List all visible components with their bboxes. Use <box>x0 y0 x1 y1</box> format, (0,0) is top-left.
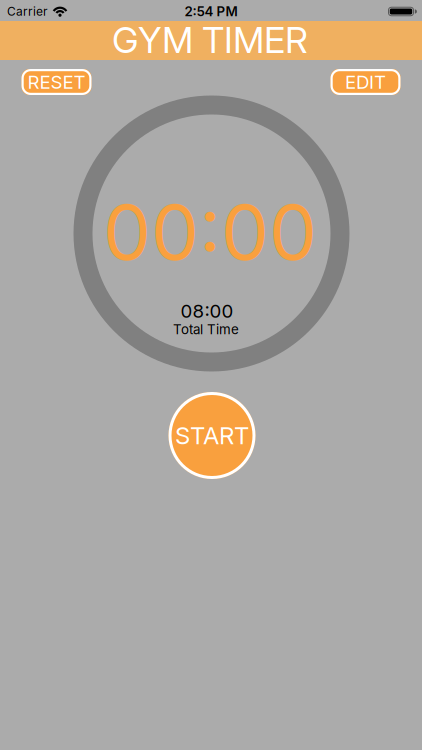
staticText: RESET <box>27 71 85 93</box>
button[interactable]: EDIT <box>330 69 400 95</box>
staticText: 2:54 PM <box>184 4 237 19</box>
staticText: GYM TIMER <box>112 19 308 61</box>
staticText: 08:00 <box>180 300 233 322</box>
button[interactable]: START <box>168 392 255 479</box>
staticText: 00:00 <box>103 187 317 277</box>
staticText: START <box>175 421 249 450</box>
staticText: Total Time <box>173 322 239 337</box>
staticText: Carrier <box>7 4 48 19</box>
button[interactable]: RESET <box>21 69 91 95</box>
staticText: EDIT <box>345 71 386 93</box>
